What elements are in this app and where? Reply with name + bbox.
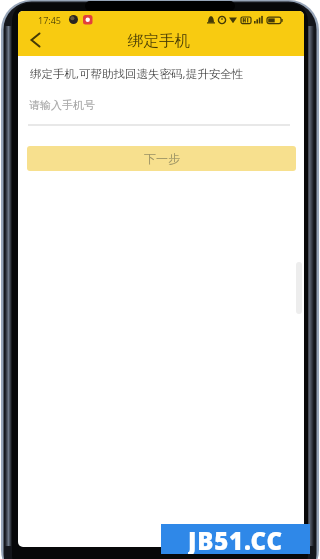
staticText: 17:45: [38, 14, 62, 26]
button[interactable]: 下一步: [27, 146, 296, 171]
button[interactable]: [22, 25, 50, 53]
staticText: JB51.CC: [188, 524, 283, 554]
staticText: 下一步: [144, 151, 180, 166]
staticText: 绑定手机,可帮助找回遗失密码,提升安全性: [30, 66, 244, 82]
staticText: 绑定手机: [128, 31, 190, 51]
staticText: 请输入手机号: [29, 98, 95, 112]
